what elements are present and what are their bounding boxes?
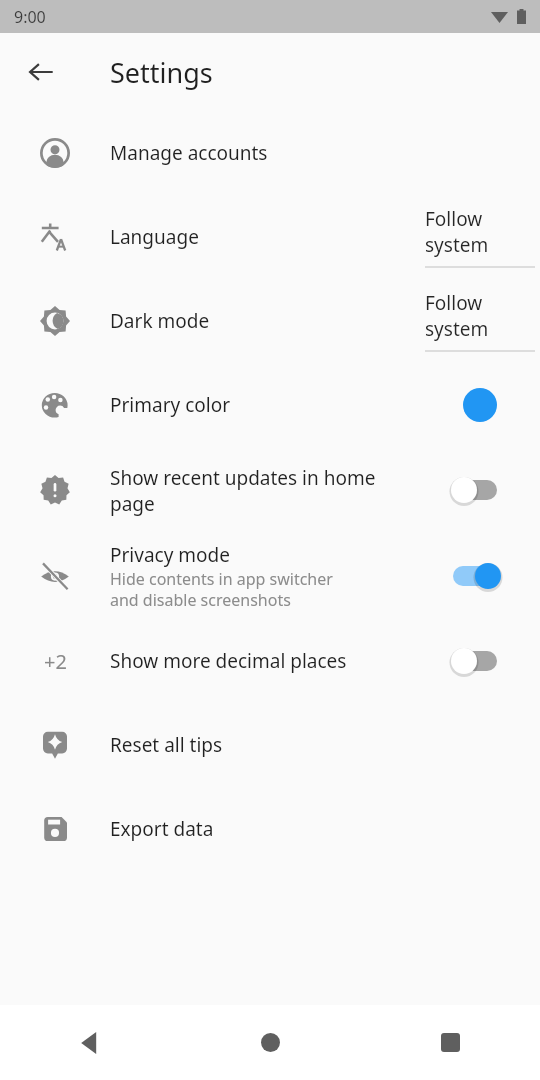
button[interactable]: Dark mode	[0, 279, 540, 363]
staticText: Hide contents in app switcher and disabl…	[110, 568, 333, 611]
button[interactable]: Manage accounts	[0, 111, 540, 195]
staticText: Language	[110, 224, 199, 250]
staticText: Export data	[110, 816, 214, 842]
staticText: Dark mode	[110, 308, 210, 334]
staticText: +2	[44, 648, 67, 675]
button[interactable]: Export data	[0, 787, 540, 871]
button[interactable]: Primary color	[0, 363, 540, 447]
staticText: Manage accounts	[110, 140, 268, 166]
button[interactable]: Back	[13, 44, 69, 100]
button[interactable]: Privacy mode	[0, 533, 540, 619]
button[interactable]: Recents	[360, 1005, 540, 1080]
button[interactable]: +2	[0, 619, 540, 703]
button[interactable]: Back	[0, 1005, 180, 1080]
button[interactable]: Follow system	[425, 206, 535, 268]
staticText: Settings	[110, 54, 213, 91]
button[interactable]: Home	[180, 1005, 360, 1080]
staticText: Reset all tips	[110, 732, 223, 758]
staticText: Privacy mode	[110, 542, 230, 568]
button[interactable]: Off	[449, 639, 511, 683]
button[interactable]: Language	[0, 195, 540, 279]
staticText: Follow system	[425, 206, 535, 258]
button[interactable]: Reset all tips	[0, 703, 540, 787]
staticText: Show recent updates in home page	[110, 465, 412, 516]
button[interactable]: On	[449, 554, 511, 598]
staticText: 9:00	[14, 6, 46, 28]
button[interactable]: Follow system	[425, 290, 535, 352]
button[interactable]	[458, 383, 502, 427]
button[interactable]: Show recent updates in home page	[0, 447, 540, 533]
staticText: Show more decimal places	[110, 648, 347, 674]
staticText: Primary color	[110, 392, 231, 418]
staticText: Follow system	[425, 290, 535, 342]
button[interactable]: Off	[449, 468, 511, 512]
